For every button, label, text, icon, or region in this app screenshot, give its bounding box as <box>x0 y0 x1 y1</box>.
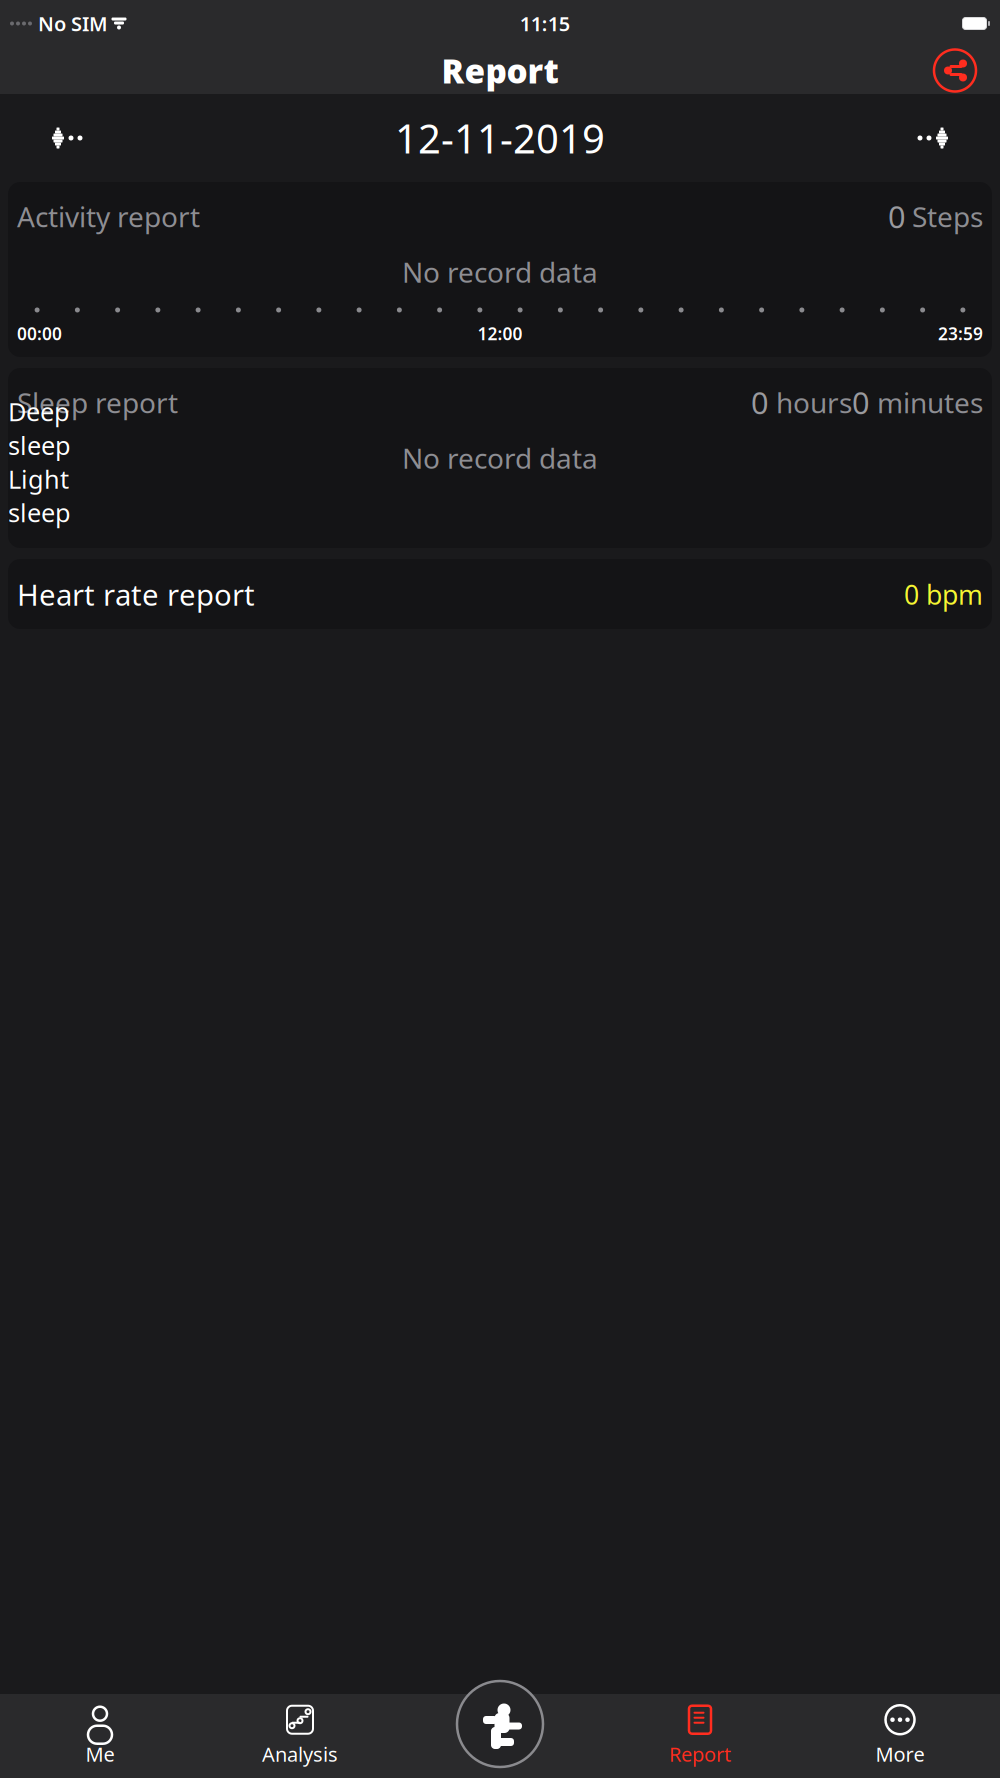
staticText: Report <box>669 1741 731 1767</box>
staticText: Report <box>441 48 558 93</box>
staticText: Me <box>85 1741 114 1767</box>
button[interactable]: Share <box>928 43 982 97</box>
staticText: Deep sleep <box>8 395 71 462</box>
staticText: Sleep report <box>17 384 178 421</box>
button[interactable]: Heart rate report <box>8 559 992 629</box>
staticText: 12-11-2019 <box>395 111 605 164</box>
staticText: 23:59 <box>938 322 983 345</box>
staticText: 12:00 <box>477 322 522 345</box>
staticText: No SIM <box>38 10 108 37</box>
button[interactable]: Analysis <box>200 1694 400 1778</box>
staticText: Activity report <box>17 198 200 235</box>
button[interactable]: Activity report <box>8 182 992 357</box>
button[interactable]: Start workout <box>452 1676 548 1772</box>
staticText: Analysis <box>262 1741 338 1767</box>
button[interactable]: Me <box>0 1694 200 1778</box>
button[interactable]: More <box>800 1694 1000 1778</box>
staticText: Heart rate report <box>17 575 255 614</box>
button[interactable]: Next day <box>898 116 968 160</box>
staticText: Light sleep <box>8 462 71 529</box>
staticText: 11:15 <box>520 10 570 37</box>
staticText: hours <box>769 384 852 421</box>
staticText: 0 <box>852 382 870 423</box>
staticText: More <box>875 1741 924 1767</box>
button[interactable]: Report <box>600 1694 800 1778</box>
staticText: 0 bpm <box>904 577 983 612</box>
staticText: No record data <box>402 439 598 477</box>
staticText: 0 <box>751 382 769 423</box>
staticText: Steps <box>912 198 983 235</box>
staticText: minutes <box>870 384 983 421</box>
button[interactable]: Sleep report <box>8 368 992 548</box>
button[interactable]: Previous day <box>32 116 102 160</box>
staticText: 00:00 <box>17 322 62 345</box>
staticText: No record data <box>402 253 598 290</box>
staticText: 0 <box>888 196 906 237</box>
